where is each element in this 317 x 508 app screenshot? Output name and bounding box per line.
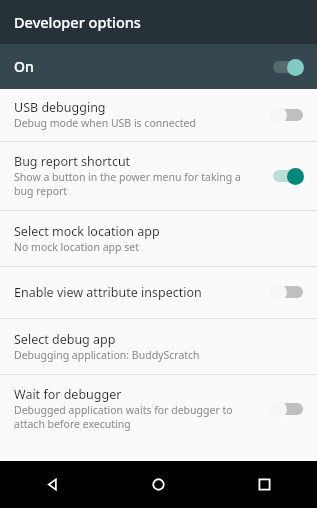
button[interactable]: Toggle Bug report shortcut [268, 164, 308, 188]
button[interactable]: Enable view attribute inspection [0, 267, 317, 318]
staticText: Wait for debugger [14, 386, 122, 403]
staticText: Debugged application waits for debugger … [14, 403, 233, 431]
button[interactable]: Wait for debugger [0, 375, 317, 443]
staticText: Debug mode when USB is connected [14, 116, 196, 130]
staticText: Debugging application: BuddyScratch [14, 348, 200, 362]
button[interactable]: USB debugging [0, 89, 317, 141]
button[interactable]: On [0, 44, 317, 89]
staticText: Select mock location app [14, 223, 160, 240]
button[interactable]: Select mock location app [0, 211, 317, 266]
staticText: Bug report shortcut [14, 153, 131, 170]
staticText: On [14, 57, 268, 76]
button[interactable]: Toggle Enable view attribute inspection [268, 280, 308, 304]
button[interactable]: Recent apps [211, 461, 317, 508]
staticText: Enable view attribute inspection [14, 284, 202, 301]
staticText: Developer options [14, 12, 141, 32]
staticText: Select debug app [14, 331, 116, 348]
button[interactable]: Developer options on [268, 55, 308, 79]
button[interactable]: Home [105, 461, 211, 508]
button[interactable]: Toggle USB debugging [268, 103, 308, 127]
button[interactable]: Toggle Wait for debugger [268, 397, 308, 421]
button[interactable]: Bug report shortcut [0, 142, 317, 210]
button[interactable]: Back [0, 461, 105, 508]
staticText: USB debugging [14, 99, 106, 116]
button[interactable]: Select debug app [0, 319, 317, 374]
staticText: No mock location app set [14, 240, 139, 254]
staticText: Show a button in the power menu for taki… [14, 170, 241, 198]
